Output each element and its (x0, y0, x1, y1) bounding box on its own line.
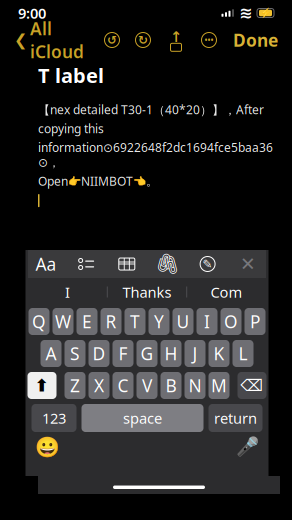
button[interactable]: Z (64, 372, 85, 399)
button[interactable]: return (208, 404, 262, 432)
staticText: Com (211, 282, 243, 302)
button[interactable]: J (184, 340, 205, 367)
staticText: information⊙6922648f2dc1694fce5baa36⊙， (38, 139, 273, 170)
button[interactable]: E (76, 308, 97, 335)
staticText: Y (154, 310, 164, 333)
staticText: ⚡ (259, 8, 271, 18)
staticText: X (94, 374, 104, 397)
staticText: 【nex detailed T30-1（40*20）】，After (38, 102, 264, 118)
staticText: K (213, 342, 224, 365)
button[interactable]: More options (199, 30, 219, 50)
button[interactable]: B (160, 372, 181, 399)
staticText: All iCloud (30, 17, 84, 63)
staticText: J (192, 342, 197, 365)
button[interactable]: 123 (31, 404, 76, 432)
button[interactable]: N (184, 372, 205, 399)
staticText: ↻ (138, 33, 148, 47)
button[interactable]: Com (187, 278, 266, 305)
button[interactable]: Share (166, 30, 186, 50)
button[interactable]: Attach file (151, 251, 183, 277)
staticText: ↺ (107, 33, 117, 47)
button[interactable]: Emoji (33, 434, 61, 460)
button[interactable]: G (136, 340, 157, 367)
button[interactable]: O (220, 308, 241, 335)
button[interactable]: Undo (102, 30, 122, 50)
button[interactable]: C (112, 372, 133, 399)
staticText: M (211, 374, 227, 397)
button[interactable]: R (100, 308, 121, 335)
button[interactable]: X (88, 372, 109, 399)
staticText: F (118, 342, 127, 365)
staticText: C (117, 374, 128, 397)
button[interactable]: Text format (30, 251, 62, 277)
staticText: 9:00 (18, 3, 46, 23)
staticText: N (188, 374, 201, 397)
staticText: W (55, 310, 71, 333)
button[interactable]: D (88, 340, 109, 367)
button[interactable]: I (28, 278, 107, 305)
button[interactable]: V (136, 372, 157, 399)
button[interactable]: Table (111, 251, 143, 277)
button[interactable]: Thanks (108, 278, 186, 305)
button[interactable]: Markup (192, 251, 224, 277)
button[interactable]: ❮ (14, 13, 84, 67)
staticText: ✕ (240, 253, 256, 275)
staticText: return (214, 408, 257, 428)
staticText: T (130, 310, 140, 333)
button[interactable]: Done (233, 24, 278, 55)
button[interactable]: Dictation (233, 434, 261, 460)
button[interactable]: U (172, 308, 193, 335)
button[interactable]: Redo (133, 30, 153, 50)
staticText: Thanks (122, 282, 171, 302)
button[interactable]: F (112, 340, 133, 367)
staticText: Open (38, 173, 68, 189)
staticText: ≋ (239, 4, 252, 22)
button[interactable]: Shift (27, 372, 56, 399)
staticText: G (140, 342, 153, 365)
button[interactable]: Hide keyboard (232, 251, 264, 277)
button[interactable]: M (208, 372, 229, 399)
staticText: O (224, 310, 238, 333)
button[interactable]: Y (148, 308, 169, 335)
button[interactable]: L (232, 340, 253, 367)
staticText: I (204, 310, 210, 333)
staticText: ⬆ (34, 376, 49, 395)
staticText: E (82, 310, 92, 333)
staticText: 🎤 (235, 436, 258, 458)
button[interactable]: A (40, 340, 61, 367)
staticText: D (92, 342, 105, 365)
button[interactable]: P (244, 308, 265, 335)
staticText: Z (70, 374, 80, 397)
button[interactable]: W (52, 308, 73, 335)
button[interactable]: S (64, 340, 85, 367)
button[interactable]: T (124, 308, 145, 335)
staticText: NIIMBOT (81, 173, 133, 189)
staticText: H (164, 342, 177, 365)
button[interactable]: space (81, 404, 203, 432)
staticText: copying this (38, 121, 104, 136)
staticText: S (70, 342, 80, 365)
button[interactable]: Checklist (70, 251, 102, 277)
staticText: space (123, 408, 162, 428)
staticText: I (65, 282, 70, 302)
button[interactable]: Q (28, 308, 49, 335)
staticText: ••• (204, 35, 213, 45)
staticText: L (238, 342, 247, 365)
staticText: R (105, 310, 116, 333)
staticText: 👈 (133, 175, 146, 187)
staticText: 👉 (68, 175, 81, 187)
staticText: 123 (42, 408, 66, 428)
staticText: Q (32, 310, 46, 333)
staticText: B (165, 374, 176, 397)
button[interactable]: I (196, 308, 217, 335)
staticText: ✎ (203, 257, 213, 271)
button[interactable]: Delete (237, 372, 266, 399)
staticText: ↑ (170, 29, 182, 45)
staticText: U (176, 310, 189, 333)
button[interactable]: K (208, 340, 229, 367)
staticText: ❮ (14, 31, 27, 49)
staticText: P (250, 310, 260, 333)
staticText: V (142, 374, 152, 397)
staticText: 😀 (34, 436, 59, 458)
button[interactable]: H (160, 340, 181, 367)
